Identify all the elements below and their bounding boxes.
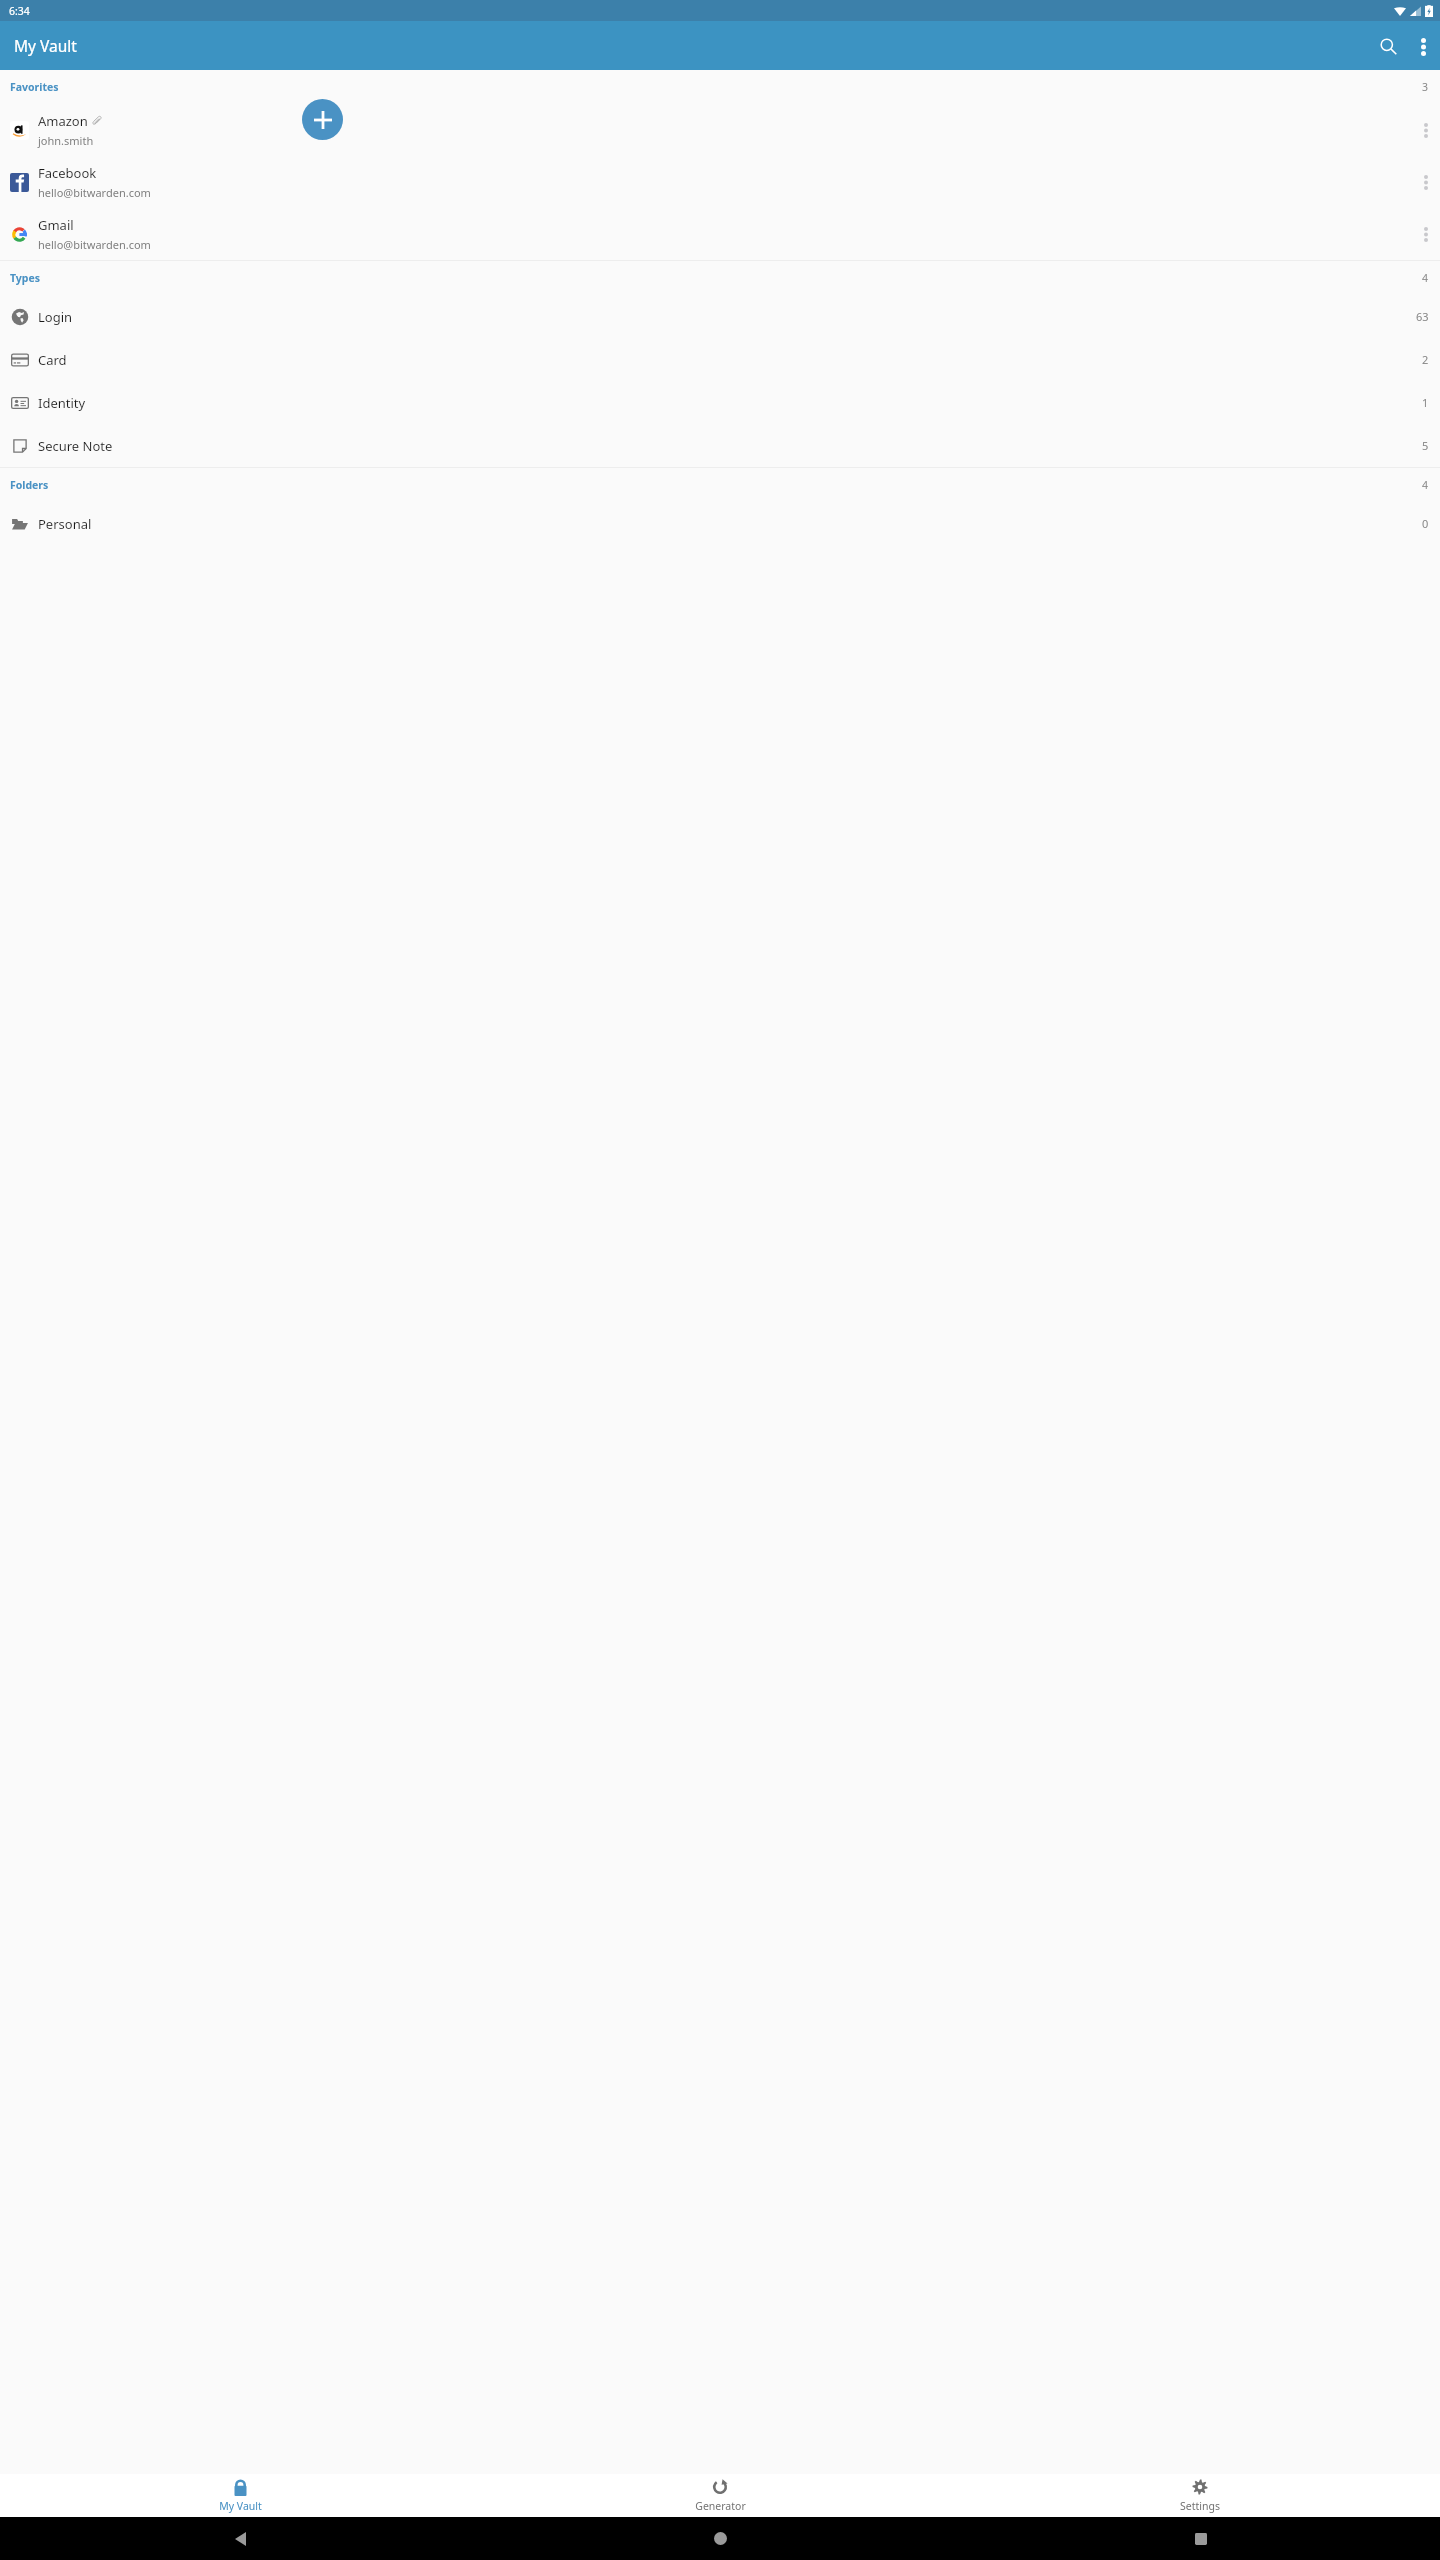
staticText: Favorites <box>10 80 59 94</box>
staticText: Login <box>38 308 1416 326</box>
staticText: 4 <box>1422 271 1429 285</box>
button[interactable]: Item options <box>1412 208 1440 260</box>
staticText: Card <box>38 351 1422 369</box>
staticText: john.smith <box>38 133 94 148</box>
button[interactable]: Card <box>0 338 1440 381</box>
button[interactable]: My Vault <box>0 2474 480 2517</box>
staticText: 4 <box>1422 478 1429 492</box>
button[interactable]: Gmail <box>0 208 1440 260</box>
staticText: Settings <box>1180 2499 1220 2513</box>
button[interactable]: Back <box>223 2521 258 2556</box>
staticText: Amazon <box>38 112 88 130</box>
button[interactable]: Home <box>703 2521 738 2556</box>
button[interactable]: Identity <box>0 381 1440 424</box>
button[interactable]: Login <box>0 295 1440 338</box>
button[interactable]: Settings <box>960 2474 1440 2517</box>
staticText: Identity <box>38 394 1422 412</box>
staticText: 0 <box>1422 516 1429 531</box>
button[interactable]: Add item <box>302 99 343 140</box>
button[interactable]: Facebook <box>0 156 1440 208</box>
staticText: 1 <box>1422 395 1429 410</box>
staticText: 5 <box>1422 438 1429 453</box>
staticText: hello@bitwarden.com <box>38 185 151 200</box>
button[interactable]: Recents <box>1183 2521 1218 2556</box>
staticText: Types <box>10 271 41 285</box>
staticText: 63 <box>1416 309 1429 324</box>
staticText: hello@bitwarden.com <box>38 237 151 252</box>
staticText: Personal <box>38 515 1422 533</box>
staticText: Gmail <box>38 216 74 234</box>
button[interactable]: Item options <box>1412 104 1440 156</box>
button[interactable]: Personal <box>0 502 1440 545</box>
button[interactable]: Amazon <box>0 104 1440 156</box>
button[interactable]: Secure Note <box>0 424 1440 467</box>
staticText: Folders <box>10 478 49 492</box>
staticText: Facebook <box>38 164 97 182</box>
button[interactable]: Generator <box>480 2474 960 2517</box>
button[interactable]: Item options <box>1412 156 1440 208</box>
staticText: My Vault <box>14 35 77 56</box>
staticText: Generator <box>695 2499 746 2513</box>
staticText: My Vault <box>219 2499 262 2513</box>
staticText: 3 <box>1422 80 1429 94</box>
staticText: 6:34 <box>9 4 30 18</box>
staticText: Secure Note <box>38 437 1422 455</box>
staticText: 2 <box>1422 352 1429 367</box>
button[interactable]: Search <box>1369 27 1407 65</box>
button[interactable]: More options <box>1407 30 1440 63</box>
